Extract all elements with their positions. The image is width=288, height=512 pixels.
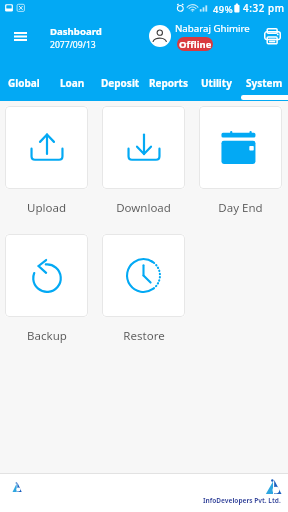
button[interactable] (199, 106, 282, 189)
button[interactable]: Reports (144, 64, 192, 101)
button[interactable]: Deposit (96, 64, 144, 101)
button[interactable] (5, 234, 88, 317)
staticText: Backup (27, 328, 67, 344)
staticText: Dashboard (50, 25, 102, 38)
staticText: Restore (123, 328, 165, 344)
staticText: Global (8, 76, 40, 90)
staticText: 49% (213, 3, 234, 16)
staticText: Deposit (101, 76, 140, 90)
button[interactable]: Global (0, 64, 48, 101)
button[interactable] (102, 234, 185, 317)
button[interactable] (5, 106, 88, 189)
button[interactable]: Loan (48, 64, 96, 101)
button[interactable]: InfoDevelopers logo (12, 482, 22, 492)
button[interactable]: Utility (192, 64, 240, 101)
staticText: Download (116, 200, 171, 216)
staticText: Loan (60, 76, 85, 90)
button[interactable]: Print (260, 24, 284, 48)
button[interactable] (102, 106, 185, 189)
staticText: InfoDevelopers Pvt. Ltd. (203, 496, 281, 505)
staticText: Reports (149, 76, 188, 90)
button[interactable]: System (240, 64, 288, 101)
staticText: Upload (27, 200, 66, 216)
staticText: Offline (179, 38, 212, 51)
staticText: 2077/09/13 (50, 39, 96, 51)
staticText: Utility (201, 76, 232, 90)
staticText: 4:32 pm (243, 2, 285, 15)
staticText: Nabaraj Ghimire (175, 22, 250, 35)
button[interactable]: Open navigation menu (7, 23, 33, 49)
staticText: Day End (218, 200, 263, 216)
staticText: System (246, 76, 283, 90)
button[interactable]: User profile (149, 25, 171, 47)
button[interactable]: Offline (177, 37, 213, 51)
